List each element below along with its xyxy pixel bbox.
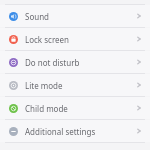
staticText: Lite mode [25, 80, 136, 91]
button[interactable]: Additional settings [0, 120, 150, 142]
button[interactable]: Sound [0, 5, 150, 27]
other: Open [136, 11, 142, 21]
staticText: Do not disturb [25, 57, 136, 68]
staticText: Child mode [25, 103, 136, 114]
button[interactable]: Lock screen [0, 28, 150, 50]
other: Open [136, 80, 142, 90]
button[interactable]: Do not disturb [0, 51, 150, 73]
staticText: Sound [25, 11, 136, 22]
other: Open [136, 126, 142, 136]
other: Open [136, 34, 142, 44]
staticText: Additional settings [25, 126, 136, 137]
button[interactable]: Lite mode [0, 74, 150, 96]
staticText: Lock screen [25, 34, 136, 45]
other: Open [136, 103, 142, 113]
button[interactable]: Child mode [0, 97, 150, 119]
other: Open [136, 57, 142, 67]
